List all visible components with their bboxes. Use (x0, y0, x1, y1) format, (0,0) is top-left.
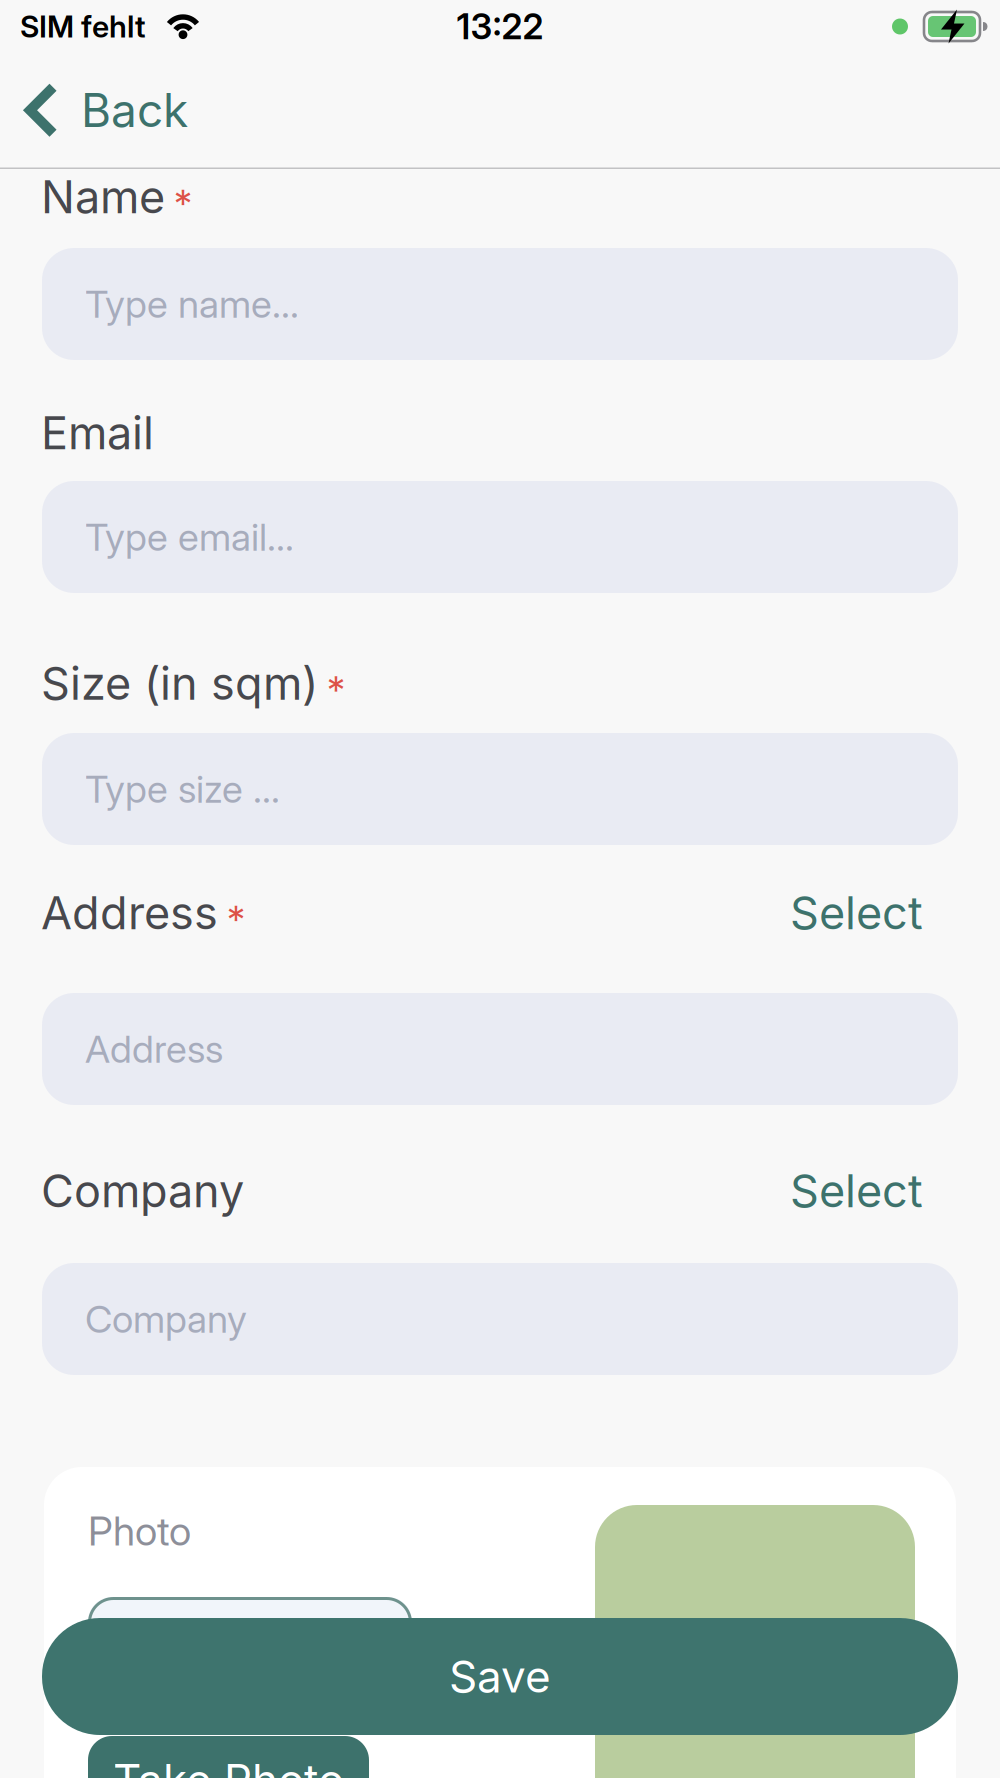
button[interactable]: Back (0, 82, 218, 138)
staticText: Photo (88, 1507, 191, 1555)
button[interactable]: Save (42, 1618, 958, 1735)
staticText: Type size ... (85, 766, 280, 812)
staticText: * (174, 180, 192, 226)
staticText: SIM fehlt (20, 8, 146, 45)
staticText: * (327, 666, 345, 712)
staticText: Address (85, 1026, 223, 1072)
staticText: Save (449, 1650, 551, 1703)
staticText: * (227, 896, 245, 942)
staticText: Back (81, 82, 188, 138)
staticText: Company (41, 1164, 244, 1218)
staticText: Name (41, 170, 165, 224)
staticText: 13:22 (456, 5, 543, 48)
staticText: Type email... (85, 514, 294, 560)
staticText: Company (85, 1296, 247, 1342)
staticText: Type name... (85, 281, 299, 327)
staticText: Take Photo (113, 1753, 344, 1778)
staticText: Address (41, 886, 218, 940)
button[interactable]: Take Photo (88, 1736, 369, 1778)
staticText: Size (in sqm) (41, 656, 318, 711)
button[interactable]: Select (790, 886, 923, 940)
staticText: Select (790, 1164, 923, 1218)
staticText: Select (790, 886, 923, 940)
button[interactable]: Choose Photo (88, 1597, 412, 1697)
staticText: Email (41, 406, 154, 460)
button[interactable]: Select (790, 1164, 923, 1218)
